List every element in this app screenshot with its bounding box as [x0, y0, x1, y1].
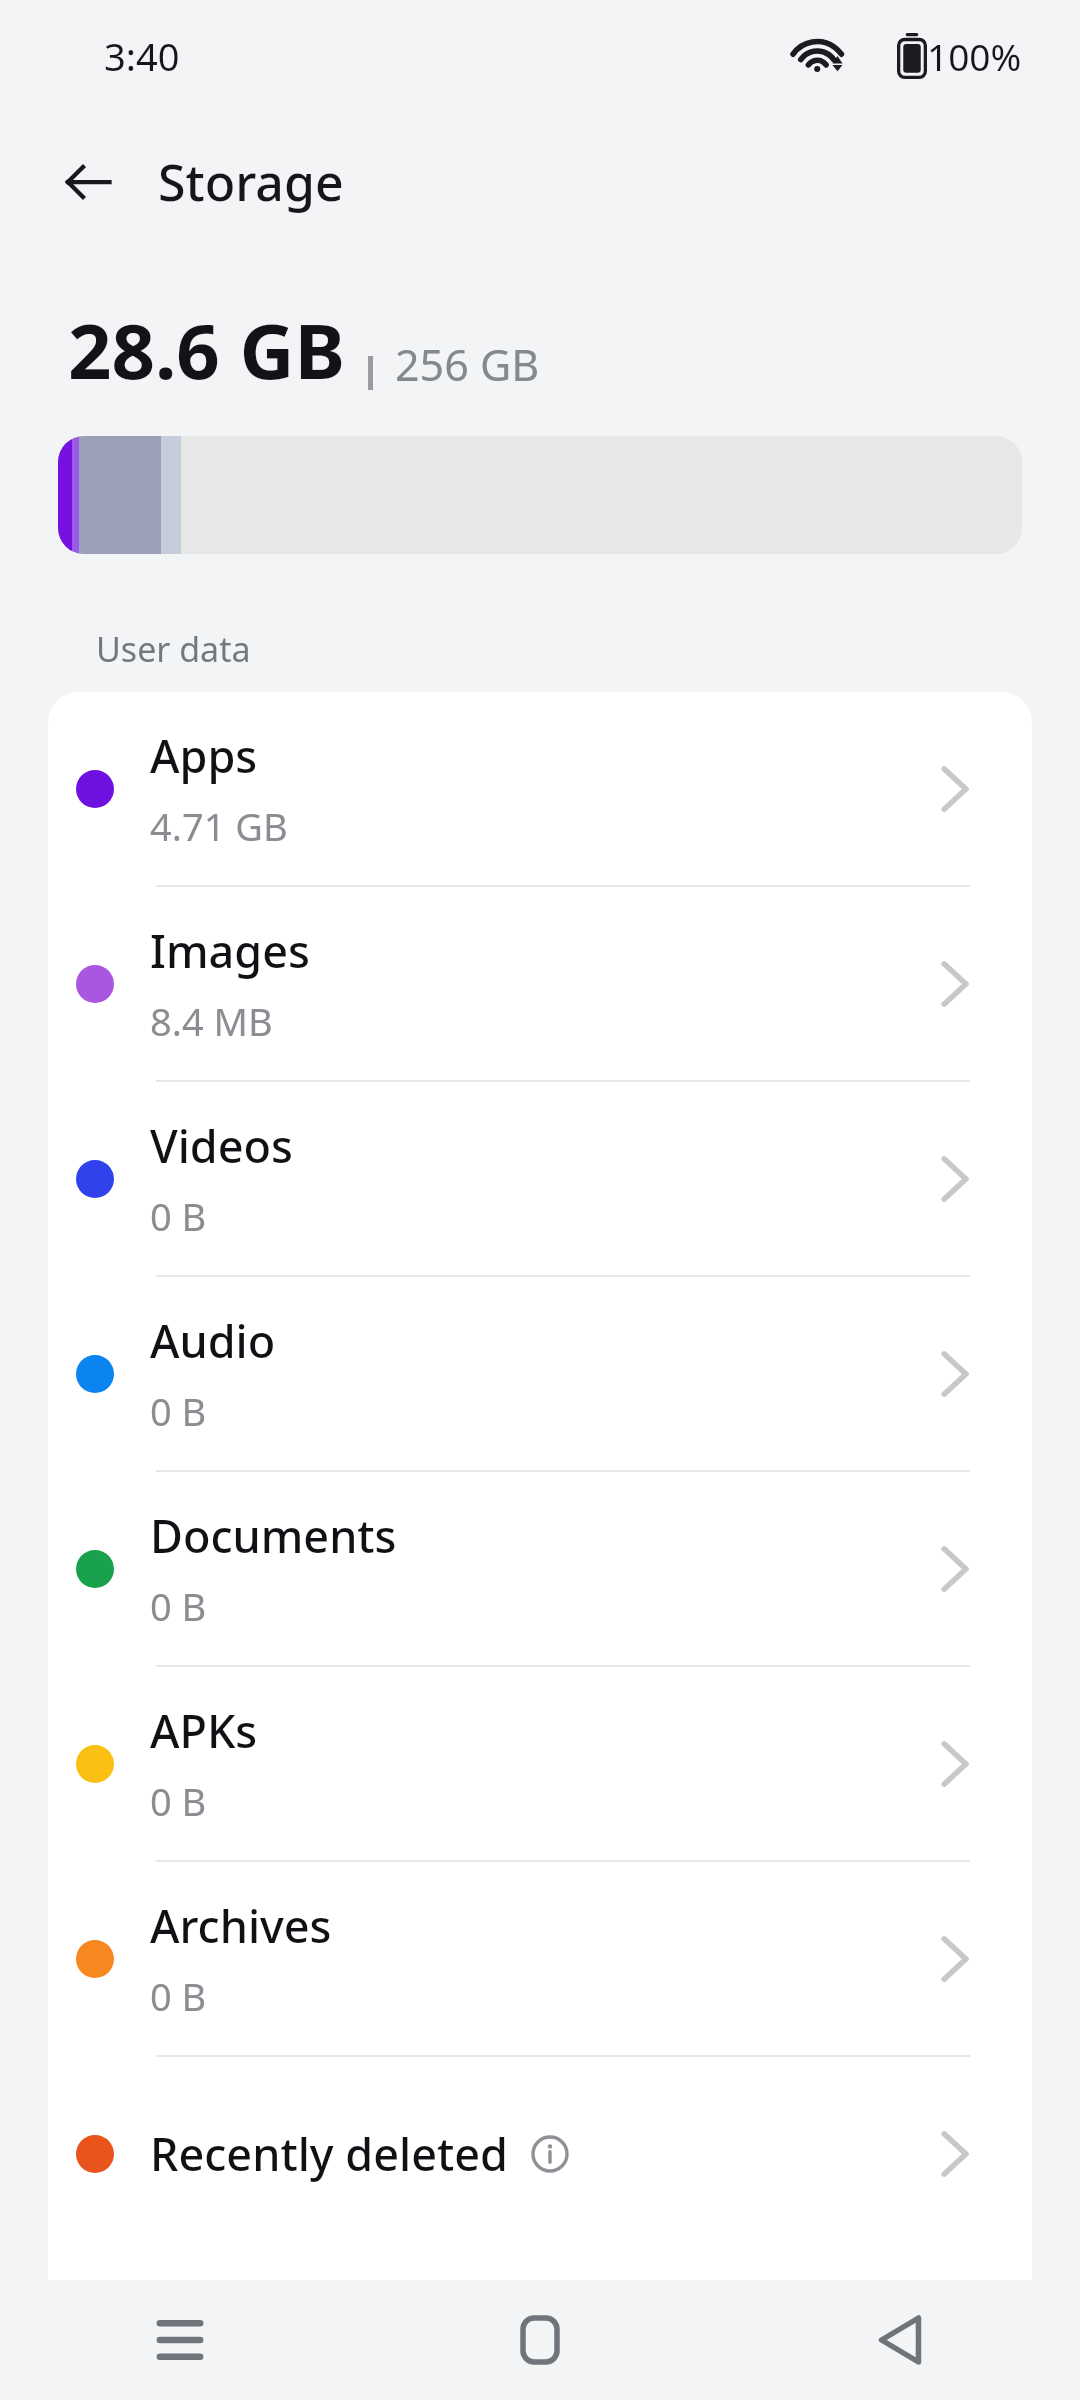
staticText: 3:40: [104, 30, 180, 82]
button[interactable]: Audio: [48, 1277, 1032, 1472]
staticText: 8.4 MB: [150, 995, 273, 1047]
staticText: Storage: [158, 148, 344, 216]
button[interactable]: Back: [40, 134, 136, 230]
staticText: 28.6 GB: [68, 298, 346, 402]
button[interactable]: Recent apps: [0, 2280, 360, 2400]
staticText: 0 B: [150, 1775, 207, 1827]
staticText: Images: [150, 920, 310, 981]
button[interactable]: Apps: [48, 692, 1032, 887]
staticText: 256 GB: [395, 335, 540, 394]
button[interactable]: Archives: [48, 1862, 1032, 2057]
staticText: 0 B: [150, 1970, 207, 2022]
staticText: Archives: [150, 1895, 332, 1956]
button[interactable]: Videos: [48, 1082, 1032, 1277]
staticText: Documents: [150, 1505, 397, 1566]
staticText: 0 B: [150, 1580, 207, 1632]
button[interactable]: Documents: [48, 1472, 1032, 1667]
button[interactable]: Images: [48, 887, 1032, 1082]
staticText: 0 B: [150, 1385, 207, 1437]
button[interactable]: Home: [360, 2280, 720, 2400]
staticText: Apps: [150, 725, 258, 786]
button[interactable]: About recently deleted: [528, 2132, 572, 2176]
staticText: Videos: [150, 1115, 293, 1176]
staticText: User data: [96, 626, 251, 672]
button[interactable]: Recently deleted: [48, 2057, 1032, 2250]
staticText: APKs: [150, 1700, 258, 1761]
staticText: 100%: [927, 31, 1022, 81]
button[interactable]: APKs: [48, 1667, 1032, 1862]
staticText: Audio: [150, 1310, 276, 1371]
button[interactable]: Back: [720, 2280, 1080, 2400]
staticText: 4.71 GB: [150, 800, 288, 852]
staticText: 0 B: [150, 1190, 207, 1242]
staticText: Recently deleted: [150, 2123, 508, 2184]
